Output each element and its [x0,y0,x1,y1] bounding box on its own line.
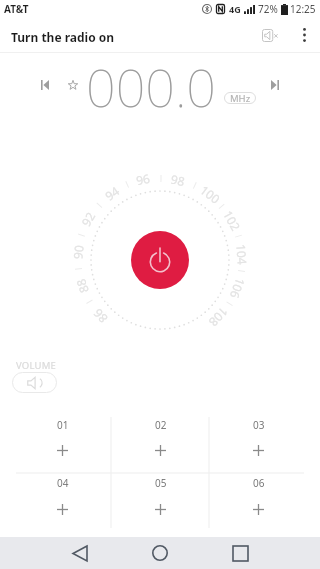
button[interactable]: Recents [220,537,260,569]
staticText: 4G [229,3,241,15]
staticText: 104 [233,243,251,266]
button[interactable]: Volume [12,372,57,393]
staticText: 05 [155,476,167,490]
staticText: 86 [89,305,111,327]
button[interactable]: Home [140,537,180,569]
button[interactable]: Power [131,231,189,289]
button[interactable]: Mute [252,20,288,50]
staticText: VOLUME [16,359,56,372]
staticText: 92 [78,209,98,229]
staticText: 02 [155,418,167,432]
staticText: 88 [72,277,92,295]
button[interactable]: 01 [13,417,111,473]
staticText: 90 [69,244,87,260]
staticText: 72% [258,2,278,16]
staticText: 108 [206,304,232,330]
button[interactable]: Next station [267,77,283,93]
button[interactable]: 02 [111,417,209,473]
button[interactable]: 06 [209,473,307,529]
staticText: 000.0 [86,51,217,122]
staticText: 106 [227,276,249,301]
button[interactable]: More options [290,20,318,50]
button[interactable]: Back [60,537,100,569]
staticText: MHz [230,92,251,104]
staticText: 04 [57,476,69,490]
button[interactable]: 04 [13,473,111,529]
button[interactable]: 03 [209,417,307,473]
staticText: Turn the radio on [11,29,115,45]
staticText: AT&T [4,2,29,16]
staticText: 01 [57,418,69,432]
staticText: 94 [102,182,122,204]
staticText: 96 [134,170,151,188]
staticText: 03 [253,418,265,432]
button[interactable]: Previous station [37,77,53,93]
staticText: 100 [197,182,224,207]
staticText: 12:25 [290,2,316,16]
staticText: 06 [253,476,265,490]
staticText: 98 [169,171,187,189]
staticText: 102 [220,207,244,233]
button[interactable]: Add to favourites [64,76,82,94]
button[interactable]: 05 [111,473,209,529]
